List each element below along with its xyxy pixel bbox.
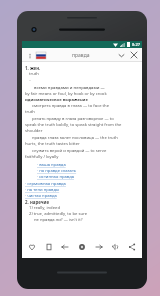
staticText: by fair means or foul, by hook or by cro… (25, 91, 107, 97)
button[interactable]: More options (25, 51, 34, 60)
staticText: truth (25, 109, 35, 115)
button[interactable]: Close (129, 50, 139, 60)
staticText: правда глаза колет пословица — the truth (32, 135, 118, 141)
staticText: · на тени правды (25, 187, 60, 193)
button[interactable]: Collapse (116, 50, 126, 60)
staticText: faithfully / loyally (25, 154, 59, 160)
button[interactable]: Share (125, 240, 139, 254)
staticText: правда (72, 52, 90, 59)
staticText: идиоматическое выражение (25, 97, 88, 103)
staticText: 8:27 (132, 42, 140, 47)
button[interactable]: Search (75, 240, 89, 254)
staticText: 2. наречие (25, 199, 50, 205)
staticText: не правда ли? — isn't it? (34, 217, 83, 223)
staticText: shoulder (25, 128, 43, 134)
staticText: служить верой и правдой — to serve (32, 148, 107, 154)
staticText: hurts, the truth tastes bitter (25, 141, 80, 147)
staticText: 1) really, indeed (29, 205, 60, 211)
button[interactable]: Language Russian (35, 51, 46, 59)
button[interactable]: Bookmark (42, 240, 56, 254)
staticText: · по правде сказать (37, 168, 77, 174)
staticText: truth (29, 71, 39, 77)
button[interactable]: Sound (108, 240, 122, 254)
staticText: всеми правдами и неправдами — (34, 85, 105, 91)
staticText: · чистая правда (25, 193, 57, 199)
staticText: · сермяжная правда (25, 181, 66, 187)
staticText: speak the truth boldly, to speak straigh… (25, 122, 122, 128)
staticText: · ваша правда (37, 162, 66, 168)
staticText: · истинная правда (37, 174, 75, 180)
button[interactable]: Back (58, 240, 72, 254)
staticText: .. (29, 77, 32, 83)
staticText: 1. жен. (25, 65, 41, 71)
button[interactable]: Forward (92, 240, 106, 254)
button[interactable]: Favorite (25, 240, 39, 254)
staticText: резать правду в глаза разговорное — to (32, 116, 114, 122)
staticText: 2) true, admittedly, to be sure (29, 211, 88, 217)
staticText: смотреть правда в глаза — to face the (32, 103, 110, 109)
